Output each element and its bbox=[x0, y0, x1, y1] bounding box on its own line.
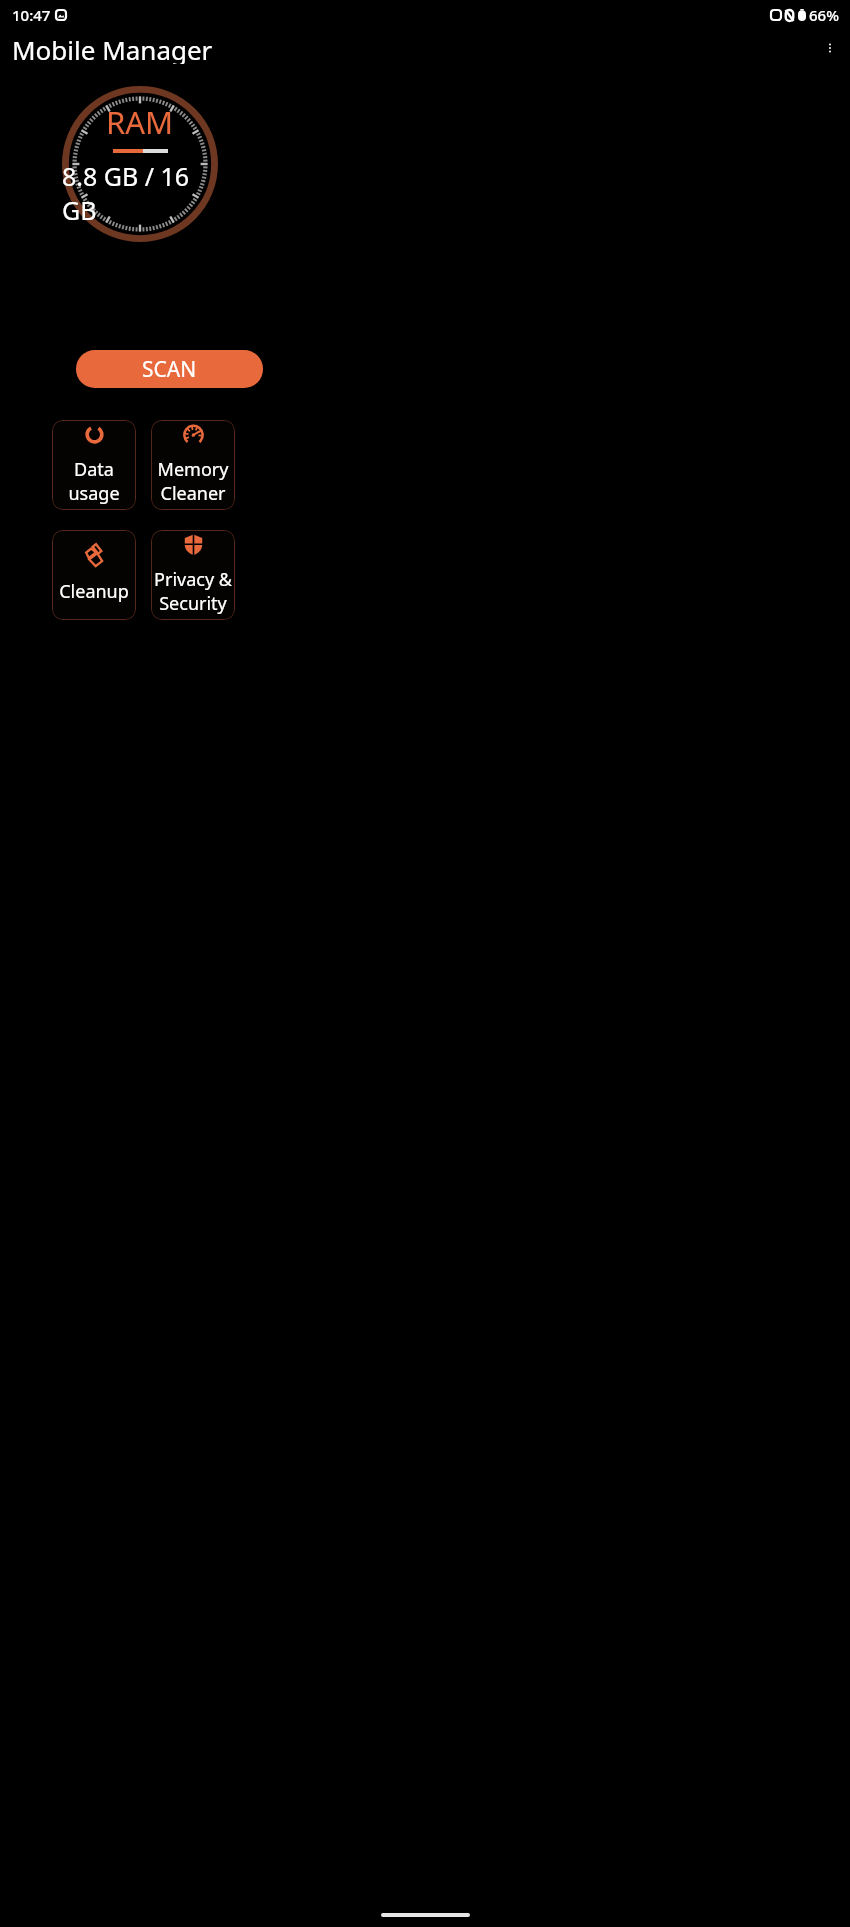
button[interactable]: SCAN bbox=[76, 350, 263, 388]
button[interactable]: Data usage bbox=[52, 420, 136, 510]
staticText: 10:47 bbox=[12, 5, 51, 25]
staticText: Mobile Manager bbox=[12, 32, 213, 64]
staticText: 66% bbox=[809, 5, 839, 25]
staticText: Cleanup bbox=[59, 579, 129, 604]
staticText: RAM bbox=[106, 101, 174, 143]
staticText: SCAN bbox=[142, 355, 197, 384]
button[interactable]: Privacy & Security bbox=[151, 530, 235, 620]
button[interactable]: Cleanup bbox=[52, 530, 136, 620]
staticText: Data usage bbox=[52, 457, 136, 505]
staticText: Memory Cleaner bbox=[151, 457, 235, 505]
staticText: 8.8 GB / 16 GB bbox=[62, 159, 218, 227]
button[interactable]: More options bbox=[819, 37, 841, 59]
staticText: Privacy & Security bbox=[154, 567, 232, 615]
button[interactable]: Memory Cleaner bbox=[151, 420, 235, 510]
